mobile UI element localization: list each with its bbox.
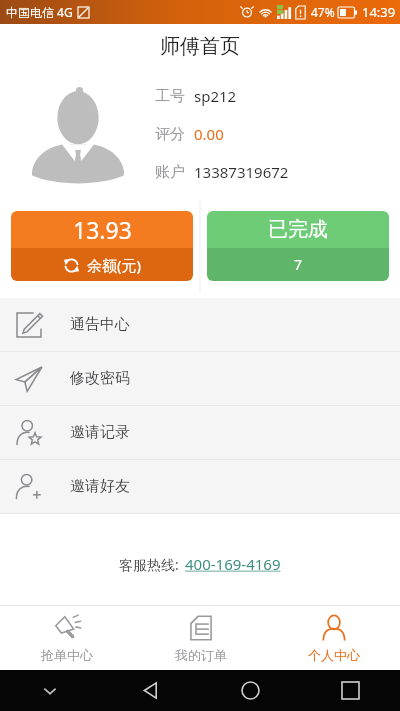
staticText: 47% (311, 4, 335, 20)
staticText: 400-169-4169 (185, 554, 281, 574)
staticText: 账户 (155, 163, 185, 182)
staticText: 13.93 (73, 214, 132, 245)
button[interactable]: 400-169-4169 (185, 554, 281, 574)
other: Recents (342, 682, 359, 699)
staticText: 余额(元) (87, 255, 142, 275)
staticText: 修改密码 (70, 369, 130, 388)
button[interactable]: 13.93 (11, 211, 193, 281)
staticText: 师傅首页 (160, 34, 240, 59)
staticText: 7 (294, 255, 303, 274)
staticText: 通告中心 (70, 315, 130, 334)
staticText: 已完成 (268, 217, 328, 242)
other: Back (141, 681, 160, 700)
staticText: 评分 (155, 125, 185, 144)
button[interactable]: 通告中心 (0, 298, 400, 351)
other: Hide navigation (42, 683, 58, 699)
button[interactable]: 邀请好友 (0, 460, 400, 513)
staticText: 个人中心 (308, 647, 360, 663)
button[interactable]: 邀请记录 (0, 406, 400, 459)
button[interactable]: 已完成 (207, 211, 389, 281)
other: Home (241, 681, 260, 700)
staticText: 客服热线: (119, 555, 179, 574)
button[interactable]: 个人中心 (267, 606, 400, 670)
staticText: 14:39 (362, 3, 396, 21)
staticText: 我的订单 (175, 647, 227, 663)
button[interactable]: 我的订单 (134, 606, 267, 670)
staticText: 抢单中心 (41, 647, 93, 663)
staticText: 中国电信 4G (6, 4, 73, 20)
staticText: 邀请好友 (70, 477, 130, 496)
staticText: 邀请记录 (70, 423, 130, 442)
staticText: 工号 (155, 87, 185, 106)
button[interactable]: 修改密码 (0, 352, 400, 405)
staticText: 13387319672 (194, 162, 289, 182)
staticText: sp212 (194, 86, 237, 106)
staticText: 0.00 (194, 124, 224, 144)
button[interactable]: 抢单中心 (0, 606, 134, 670)
